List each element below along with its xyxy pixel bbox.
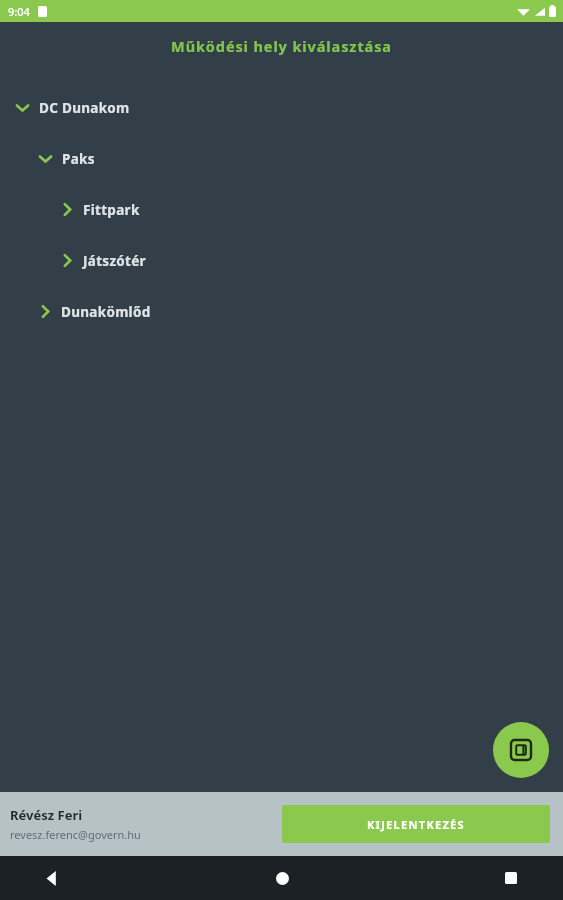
button[interactable]: Játszótér (0, 235, 563, 286)
staticText: Játszótér (83, 252, 146, 270)
staticText: Működési hely kiválasztása (171, 36, 392, 56)
staticText: Fittpark (83, 201, 140, 219)
staticText: Paks (62, 150, 95, 168)
button[interactable]: DC Dunakom (0, 82, 563, 133)
button[interactable]: KIJELENTKEZÉS (282, 805, 550, 843)
staticText: Révész Feri (10, 806, 83, 824)
button[interactable]: Fittpark (0, 184, 563, 235)
button[interactable]: Dunakömlőd (0, 286, 563, 337)
button[interactable]: Back (30, 856, 74, 900)
button[interactable]: NFC olvasás (493, 722, 549, 778)
staticText: Dunakömlőd (61, 303, 151, 321)
button[interactable]: Home (260, 856, 304, 900)
staticText: revesz.ferenc@govern.hu (10, 827, 141, 842)
staticText: 9:04 (8, 4, 30, 19)
button[interactable]: Paks (0, 133, 563, 184)
button[interactable]: Recents (489, 856, 533, 900)
staticText: KIJELENTKEZÉS (367, 817, 465, 832)
staticText: DC Dunakom (39, 99, 130, 117)
